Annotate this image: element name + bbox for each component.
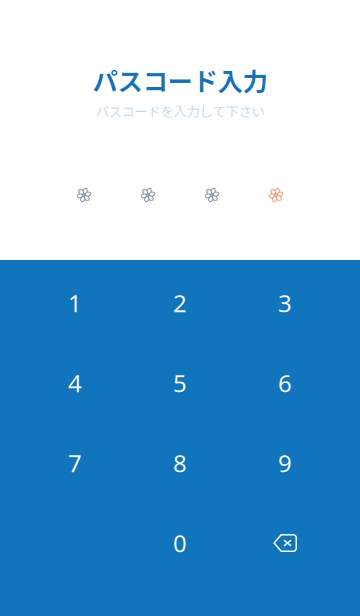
button[interactable]: 9: [232, 423, 337, 503]
button[interactable]: 2: [127, 263, 232, 343]
staticText: パスコード入力: [92, 62, 267, 98]
staticText: 5: [173, 367, 187, 399]
button[interactable]: 8: [127, 423, 232, 503]
staticText: 4: [68, 367, 82, 399]
staticText: 0: [173, 527, 187, 559]
staticText: パスコードを入力して下さい: [95, 101, 264, 121]
staticText: 9: [278, 447, 292, 479]
button[interactable]: 1: [22, 263, 127, 343]
staticText: 3: [278, 287, 292, 319]
staticText: 7: [68, 447, 82, 479]
button[interactable]: 3: [232, 263, 337, 343]
staticText: 2: [173, 287, 187, 319]
button[interactable]: 6: [232, 343, 337, 423]
staticText: 8: [173, 447, 187, 479]
button[interactable]: 7: [22, 423, 127, 503]
staticText: 1: [68, 287, 82, 319]
staticText: 6: [278, 367, 292, 399]
button[interactable]: 5: [127, 343, 232, 423]
button[interactable]: 0: [127, 503, 232, 583]
button[interactable]: 4: [22, 343, 127, 423]
button[interactable]: Delete: [232, 503, 337, 583]
